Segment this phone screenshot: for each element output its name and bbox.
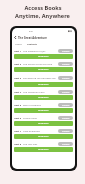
button[interactable]: Download xyxy=(14,147,73,152)
staticText: ▮▮▮ xyxy=(68,30,72,33)
staticText: Download xyxy=(38,135,49,138)
button[interactable]: Unit 4 xyxy=(12,88,75,95)
button[interactable]: Download xyxy=(14,54,73,59)
staticText: Unit 5 xyxy=(14,103,22,106)
staticText: Preview xyxy=(62,130,70,133)
button[interactable]: Contents xyxy=(26,41,37,47)
staticText: Download xyxy=(38,68,49,71)
button[interactable]: Preview xyxy=(58,76,73,80)
staticText: Preview xyxy=(62,50,70,53)
staticText: Preview xyxy=(62,63,70,66)
staticText: Access Books xyxy=(24,4,62,12)
button[interactable]: Unit 7 xyxy=(12,127,75,134)
staticText: Discovering the Heritage Site xyxy=(23,76,57,79)
button[interactable]: Unit 3 xyxy=(12,73,75,82)
staticText: 9:41 xyxy=(29,30,34,33)
staticText: Download xyxy=(38,109,49,112)
button[interactable]: Back xyxy=(13,35,18,40)
staticText: Unit 7 xyxy=(14,129,22,132)
staticText: Anytime, Anywhere xyxy=(15,12,70,20)
button[interactable]: Download xyxy=(14,67,73,72)
button[interactable]: Videos xyxy=(14,41,23,47)
staticText: Videos xyxy=(15,43,22,46)
button[interactable]: Preview xyxy=(58,116,73,120)
staticText: Preview xyxy=(62,91,70,94)
staticText: Download xyxy=(38,96,49,99)
button[interactable]: Unit 5 xyxy=(12,101,75,108)
staticText: Unit 1 xyxy=(14,49,22,52)
button[interactable]: Preview xyxy=(58,49,73,53)
button[interactable]: Preview xyxy=(58,142,73,146)
staticText: Unit 6 xyxy=(14,116,22,119)
staticText: Unit 8 xyxy=(14,142,22,145)
staticText: Download xyxy=(38,148,49,151)
staticText: The Forest of the Old Tree xyxy=(23,62,57,65)
staticText: The Last Day xyxy=(23,142,57,145)
staticText: The Mountain Path xyxy=(23,90,57,93)
staticText: Cave Exploring xyxy=(23,129,57,132)
button[interactable]: Preview xyxy=(58,129,73,133)
staticText: Download xyxy=(38,83,49,86)
button[interactable]: Download xyxy=(14,121,73,126)
staticText: The Fireworks of Joy xyxy=(23,49,57,52)
button[interactable]: Preview xyxy=(58,62,73,66)
button[interactable]: Unit 6 xyxy=(12,114,75,121)
staticText: Preview xyxy=(62,104,70,107)
staticText: Preview xyxy=(62,143,70,146)
button[interactable]: Preview xyxy=(58,90,73,94)
button[interactable]: Unit 8 xyxy=(12,140,75,147)
button[interactable]: Unit 2 xyxy=(12,60,75,67)
staticText: Download xyxy=(38,122,49,125)
staticText: The Great Adventure xyxy=(18,36,48,40)
staticText: Preview xyxy=(62,77,70,80)
staticText: Unit 3 xyxy=(14,76,22,79)
button[interactable]: Download xyxy=(14,82,73,87)
button[interactable]: Unit 1 xyxy=(12,47,75,54)
staticText: River of Dreams xyxy=(23,103,57,106)
button[interactable]: Preview xyxy=(58,103,73,107)
staticText: Contents xyxy=(27,43,37,46)
staticText: Sailing Away xyxy=(23,116,57,119)
staticText: Unit 4 xyxy=(14,90,22,93)
button[interactable]: Download xyxy=(14,95,73,100)
staticText: Unit 2 xyxy=(14,62,22,65)
staticText: Preview xyxy=(62,117,70,120)
staticText: Download xyxy=(38,55,49,58)
button[interactable]: Download xyxy=(14,134,73,139)
button[interactable]: Download xyxy=(14,108,73,113)
